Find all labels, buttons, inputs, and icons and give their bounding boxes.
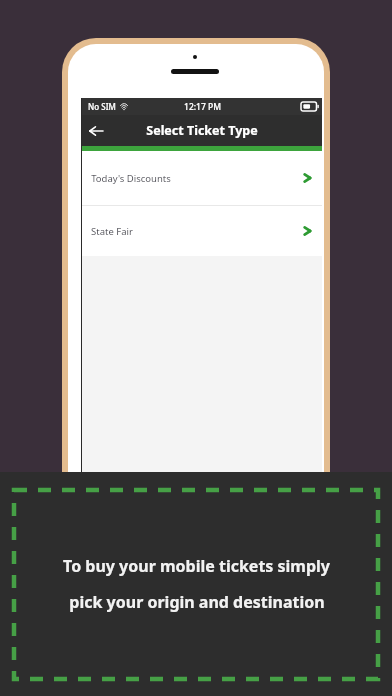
staticText: State Fair [91,225,133,238]
button[interactable]: State Fair [82,206,322,256]
button[interactable]: Today's Discounts [82,151,322,205]
staticText: No SIM [88,101,116,112]
staticText: Select Ticket Type [146,122,258,139]
staticText: To buy your mobile tickets simply [63,555,330,577]
staticText: 12:17 PM [184,101,221,113]
staticText: pick your origin and destination [69,591,325,613]
staticText: Today's Discounts [91,172,171,185]
button[interactable]: Back [82,117,110,145]
